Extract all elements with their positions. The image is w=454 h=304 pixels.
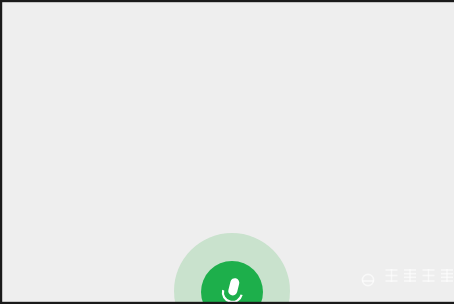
button[interactable]: Voice input microphone bbox=[0, 0, 454, 304]
